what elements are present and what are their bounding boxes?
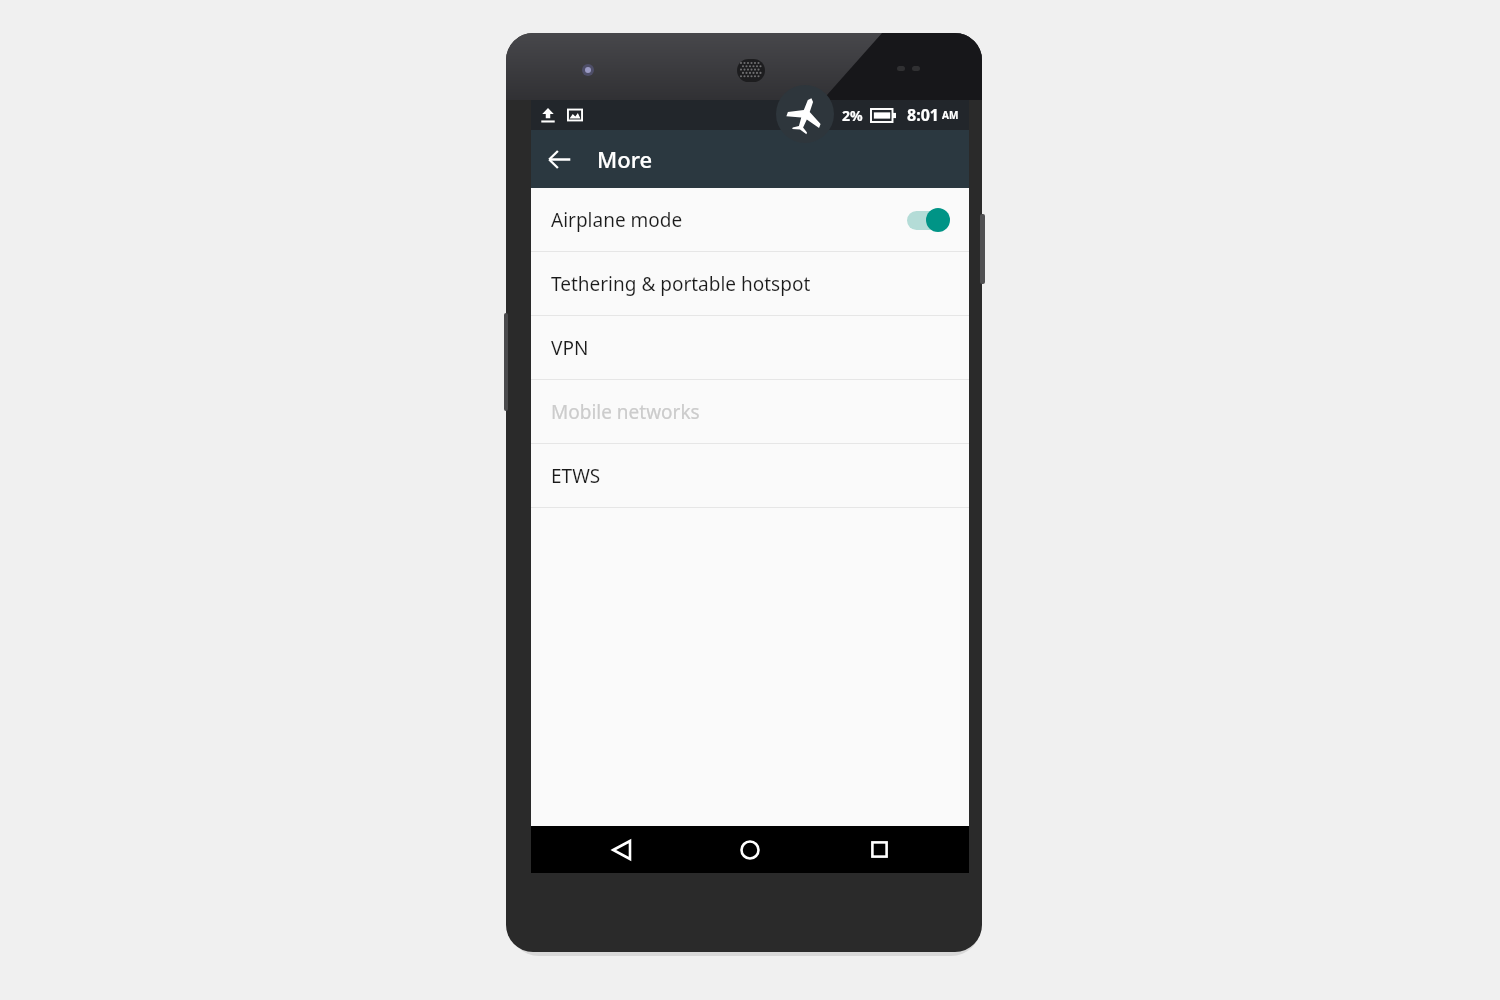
button[interactable]: Navigate up bbox=[531, 131, 587, 187]
button[interactable]: Recent apps bbox=[841, 826, 917, 873]
other: Airplane mode on bbox=[776, 85, 834, 143]
staticText: ETWS bbox=[551, 463, 601, 489]
button[interactable]: Tethering & portable hotspot bbox=[531, 252, 969, 315]
staticText: 8:01 bbox=[907, 104, 939, 126]
staticText: More bbox=[597, 144, 653, 174]
button[interactable]: Back bbox=[584, 826, 660, 873]
button[interactable]: Home bbox=[712, 826, 788, 873]
staticText: Mobile networks bbox=[551, 399, 700, 425]
button[interactable]: Mobile networks bbox=[531, 380, 969, 443]
staticText: AM bbox=[942, 108, 959, 122]
button[interactable]: Airplane mode bbox=[531, 188, 969, 251]
button[interactable]: ETWS bbox=[531, 444, 969, 507]
staticText: VPN bbox=[551, 335, 589, 361]
staticText: Tethering & portable hotspot bbox=[551, 271, 811, 297]
staticText: 2% bbox=[842, 106, 863, 125]
staticText: Airplane mode bbox=[551, 207, 683, 233]
button[interactable]: VPN bbox=[531, 316, 969, 379]
